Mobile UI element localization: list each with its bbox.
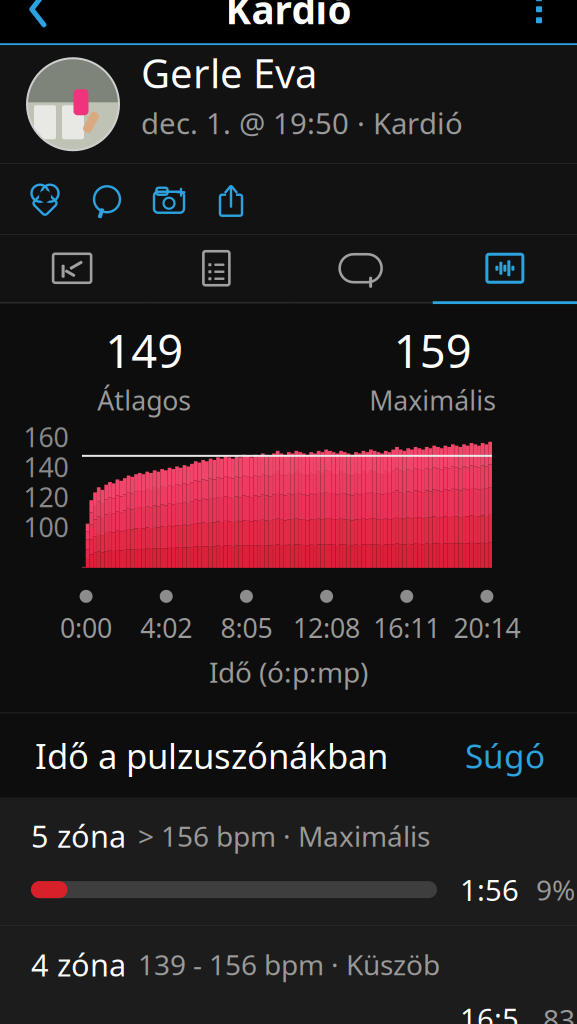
staticText: 100 [23,509,68,544]
staticText: Gerle Eva [141,46,317,99]
staticText: > 156 bpm · Maximális [138,817,430,854]
staticText: 8:05 [220,610,272,645]
button[interactable]: Details [144,235,288,301]
button[interactable]: More options [511,0,567,37]
staticText: Maximális [369,382,496,418]
button[interactable]: Map [0,235,144,301]
staticText: 1:56 [460,870,519,909]
staticText: Idő (ó:p:mp) [209,653,368,690]
staticText: 139 - 156 bpm · Küszöb [138,946,440,983]
staticText: 120 [23,479,68,514]
staticText: 149 [105,320,183,380]
staticText: 16:11 [373,610,440,645]
staticText: 140 [23,449,68,484]
staticText: Átlagos [97,382,191,418]
button[interactable]: Laps [288,235,433,301]
button[interactable]: 5 zóna [0,797,577,925]
staticText: 16:53 [460,999,519,1024]
staticText: Súgó [465,733,545,778]
staticText: Kardió [225,0,351,35]
button[interactable]: Back [10,0,66,37]
button[interactable]: Share [200,171,262,227]
button[interactable]: 4 zóna [0,926,577,1024]
staticText: 12:08 [293,610,360,645]
button[interactable]: Súgó [459,725,551,786]
staticText: 160 [23,419,68,454]
staticText: 5 zóna [31,815,126,856]
staticText: 9% [536,871,575,908]
button[interactable]: Like [14,171,76,227]
staticText: dec. 1. @ 19:50 · Kardió [141,103,463,142]
staticText: 83% [543,1001,575,1024]
staticText: 0:00 [60,610,112,645]
button[interactable]: Add photo [138,171,200,227]
staticText: 20:14 [453,610,520,645]
staticText: 159 [394,320,472,380]
button[interactable]: Heart rate [433,235,577,301]
staticText: 4 zóna [31,944,126,985]
staticText: 4:02 [140,610,192,645]
button[interactable]: Comment [76,171,138,227]
staticText: Idő a pulzuszónákban [35,732,388,778]
